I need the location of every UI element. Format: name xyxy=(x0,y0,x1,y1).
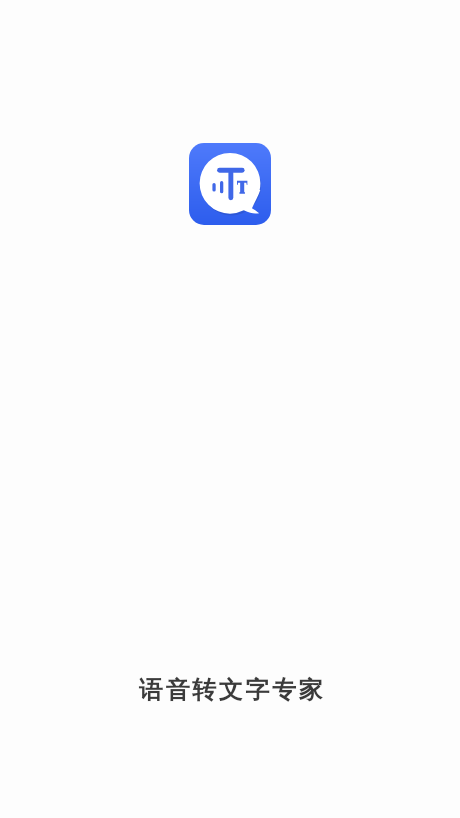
button[interactable]: 语音转文字专家 xyxy=(189,143,271,225)
staticText: 语音转文字专家 xyxy=(2,675,460,705)
